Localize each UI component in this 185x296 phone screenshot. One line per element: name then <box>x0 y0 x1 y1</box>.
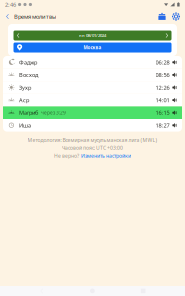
staticText: 06:28 <box>155 59 169 66</box>
staticText: через 3:29 <box>41 109 66 116</box>
button[interactable]: Изменить настройки <box>81 152 131 159</box>
button[interactable]: Фаджр <box>3 56 182 69</box>
staticText: 16:15 <box>155 109 169 116</box>
staticText: Москва <box>83 44 101 50</box>
staticText: Изменить настройки <box>81 152 131 159</box>
staticText: Аср <box>19 96 29 104</box>
staticText: Фаджр <box>19 59 37 66</box>
staticText: Иша <box>19 122 31 129</box>
button[interactable]: Зухр <box>3 81 182 94</box>
staticText: Магриб <box>19 109 38 116</box>
button[interactable]: Назад <box>1 10 14 23</box>
staticText: Зухр <box>19 84 31 91</box>
staticText: пн 08/01/2024 <box>79 33 106 38</box>
button[interactable]: Календарь <box>155 10 169 23</box>
button[interactable]: Москва <box>13 42 171 52</box>
staticText: 12:26 <box>155 84 169 91</box>
staticText: Методология: Всемирная мусульманская лиг… <box>27 137 157 143</box>
staticText: Время молитвы <box>14 13 56 20</box>
staticText: Не верно? <box>54 152 79 159</box>
button[interactable]: Настройки <box>169 10 183 23</box>
staticText: Часовой пояс: UTC +03:00 <box>62 144 123 151</box>
staticText: 08:56 <box>155 71 169 79</box>
button[interactable]: Аср <box>3 94 182 106</box>
staticText: 18:27 <box>155 122 169 129</box>
button[interactable]: пн 08/01/2024 <box>13 30 171 40</box>
staticText: 2:46 <box>5 1 16 8</box>
staticText: 14:01 <box>155 96 169 104</box>
button[interactable]: Магриб <box>3 106 182 119</box>
staticText: Восход <box>19 71 38 79</box>
button[interactable]: Иша <box>3 119 182 132</box>
button[interactable]: Восход <box>3 69 182 81</box>
